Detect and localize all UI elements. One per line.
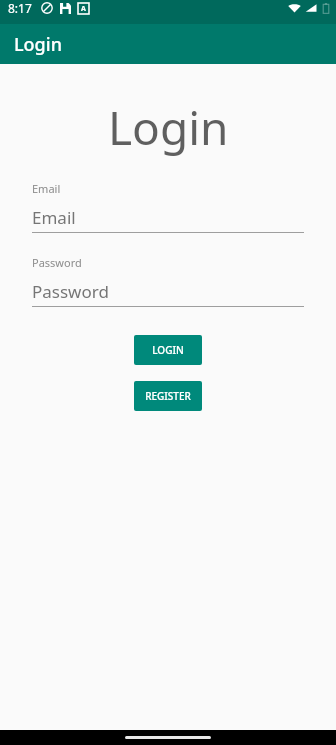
staticText: Password [32, 255, 82, 270]
button[interactable]: Email [32, 206, 304, 233]
button[interactable]: Password [32, 280, 304, 307]
staticText: Password [32, 280, 109, 303]
staticText: LOGIN [152, 343, 184, 357]
staticText: 8:17 [8, 0, 32, 16]
staticText: Login [14, 32, 62, 57]
staticText: Login [108, 96, 229, 159]
staticText: A [81, 4, 86, 14]
button[interactable]: REGISTER [134, 381, 202, 411]
staticText: Email [32, 206, 76, 229]
button[interactable]: LOGIN [134, 335, 202, 365]
staticText: Email [32, 181, 61, 196]
staticText: REGISTER [145, 389, 191, 403]
